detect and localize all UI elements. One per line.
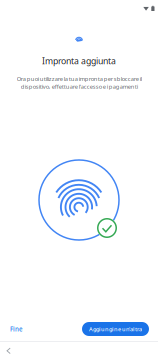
staticText: Fine — [10, 325, 23, 333]
staticText: Ora puoi utilizzare la tua impronta per … — [16, 75, 141, 90]
staticText: Aggiungine un'altra — [89, 325, 142, 333]
button[interactable]: Fine — [3, 321, 30, 337]
staticText: Impronta aggiunta — [42, 55, 116, 67]
button[interactable]: Back — [0, 341, 17, 360]
button[interactable]: Aggiungine un'altra — [82, 322, 149, 336]
